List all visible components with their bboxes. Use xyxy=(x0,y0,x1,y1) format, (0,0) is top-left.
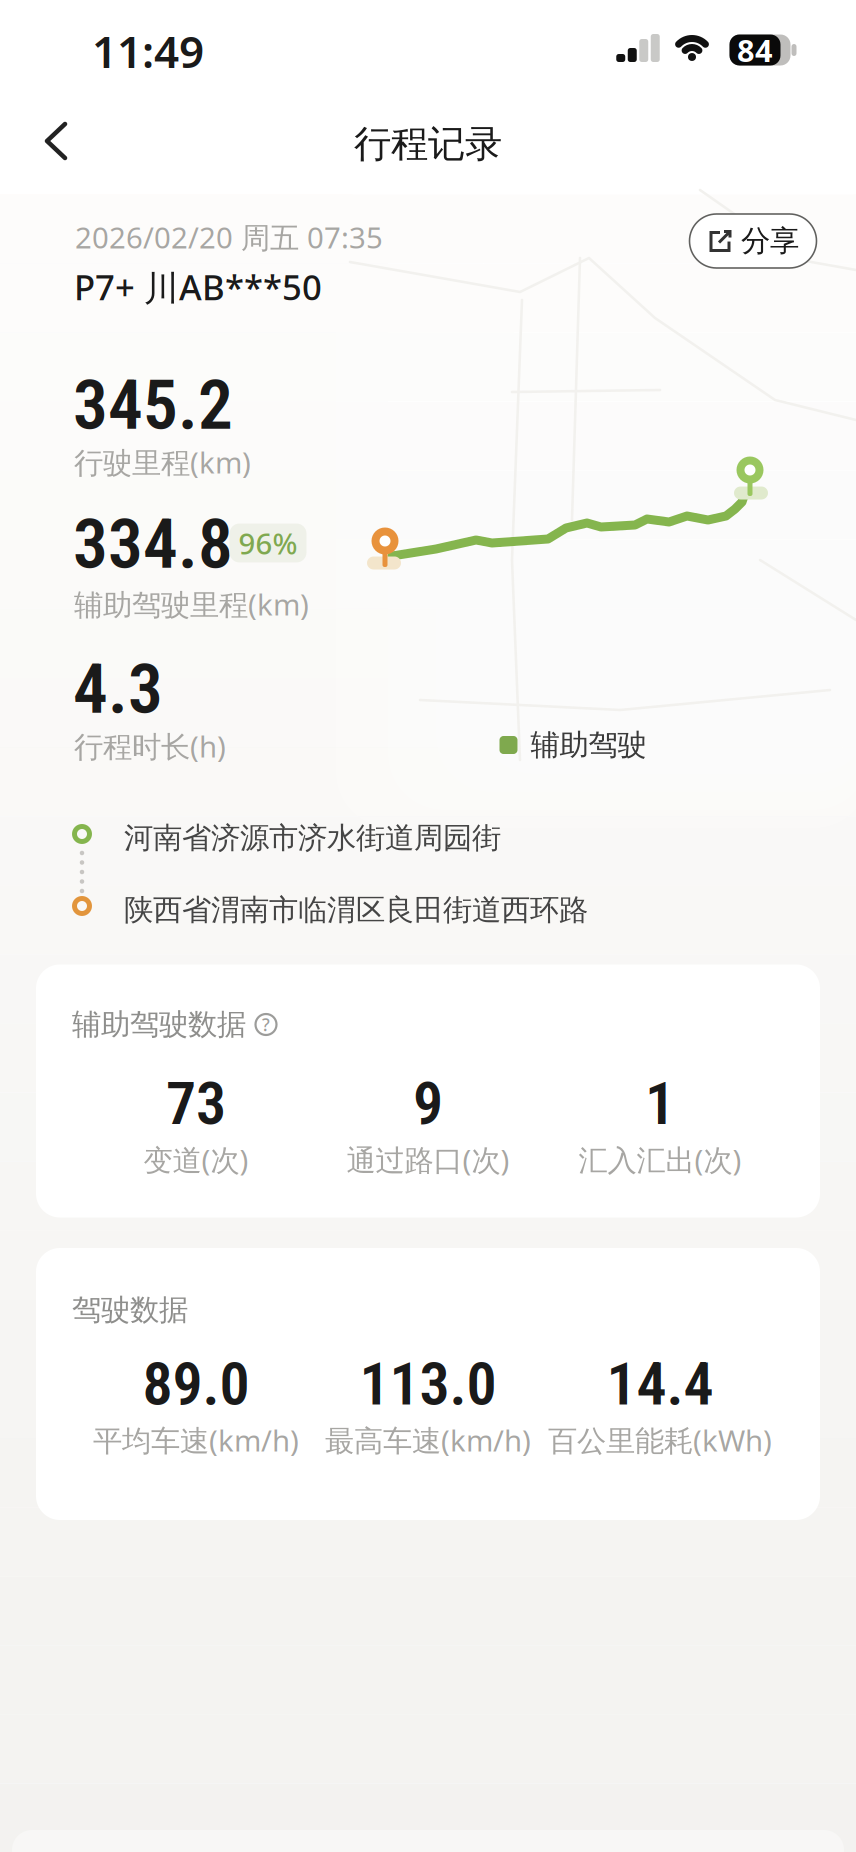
staticText: 345.2 xyxy=(73,364,233,446)
staticText: 14.4 xyxy=(606,1349,713,1419)
staticText: 百公里能耗(kWh) xyxy=(548,1420,772,1459)
staticText: 辅助驾驶里程(km) xyxy=(74,584,309,623)
staticText: 平均车速(km/h) xyxy=(93,1420,299,1459)
staticText: 行程时长(h) xyxy=(74,726,226,765)
staticText: 辅助驾驶 xyxy=(530,727,646,763)
staticText: 334.8 xyxy=(73,503,233,585)
staticText: 84 xyxy=(737,30,773,70)
staticText: ? xyxy=(262,1013,270,1036)
staticText: 汇入汇出(次) xyxy=(578,1140,741,1179)
staticText: 行程记录 xyxy=(354,121,502,167)
staticText: 辅助驾驶数据 xyxy=(72,1006,246,1042)
staticText: 河南省济源市济水街道周园街 xyxy=(124,820,501,856)
staticText: 分享 xyxy=(741,223,799,259)
staticText: 变道(次) xyxy=(143,1140,248,1179)
staticText: 行驶里程(km) xyxy=(74,442,251,481)
staticText: 9 xyxy=(413,1068,443,1139)
staticText: 113.0 xyxy=(359,1349,496,1419)
staticText: 73 xyxy=(166,1068,226,1139)
staticText: 陕西省渭南市临渭区良田街道西环路 xyxy=(124,892,588,928)
staticText: P7+ 川AB***50 xyxy=(74,264,322,310)
staticText: 89.0 xyxy=(142,1349,249,1419)
staticText: 通过路口(次) xyxy=(346,1140,509,1179)
staticText: 驾驶数据 xyxy=(72,1292,188,1328)
staticText: 最高车速(km/h) xyxy=(325,1420,531,1459)
button[interactable]: 辅助驾驶数据说明 xyxy=(254,1012,278,1036)
staticText: 1 xyxy=(645,1068,675,1139)
staticText: 11:49 xyxy=(92,22,204,80)
button[interactable]: Back xyxy=(40,117,88,165)
staticText: 4.3 xyxy=(73,648,163,730)
staticText: 2026/02/20 周五 07:35 xyxy=(75,217,383,256)
button[interactable]: 分享 xyxy=(689,214,816,268)
staticText: 96% xyxy=(238,523,297,562)
